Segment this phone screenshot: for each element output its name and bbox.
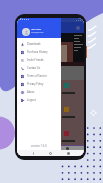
button[interactable]: Contact Us <box>17 64 61 72</box>
button[interactable]: Downloads <box>17 40 61 48</box>
staticText: version 1.0.0 <box>31 144 47 148</box>
button[interactable]: Home <box>49 152 52 155</box>
button[interactable]: Logout <box>17 96 61 104</box>
staticText: Purchase History <box>27 50 48 54</box>
staticText: Downloads <box>27 42 41 46</box>
staticText: Your Name <box>31 28 41 31</box>
button[interactable]: Purchase History <box>17 48 61 56</box>
button[interactable]: Privacy Policy <box>17 80 61 88</box>
staticText: Privacy Policy <box>27 82 44 86</box>
staticText: Terms of Service <box>27 74 47 78</box>
staticText: Contact Us <box>27 66 41 70</box>
button[interactable]: Recents <box>67 152 70 155</box>
staticText: Search <box>21 25 34 30</box>
button[interactable]: Terms of Service <box>17 72 61 80</box>
button[interactable]: Invite Friends <box>17 56 61 64</box>
button[interactable]: About <box>17 88 61 96</box>
button[interactable]: Back <box>32 152 35 155</box>
staticText: Logout <box>27 98 36 102</box>
staticText: About <box>27 90 35 94</box>
staticText: yourmail@gmail.com <box>31 32 44 34</box>
staticText: Invite Friends <box>27 58 44 62</box>
